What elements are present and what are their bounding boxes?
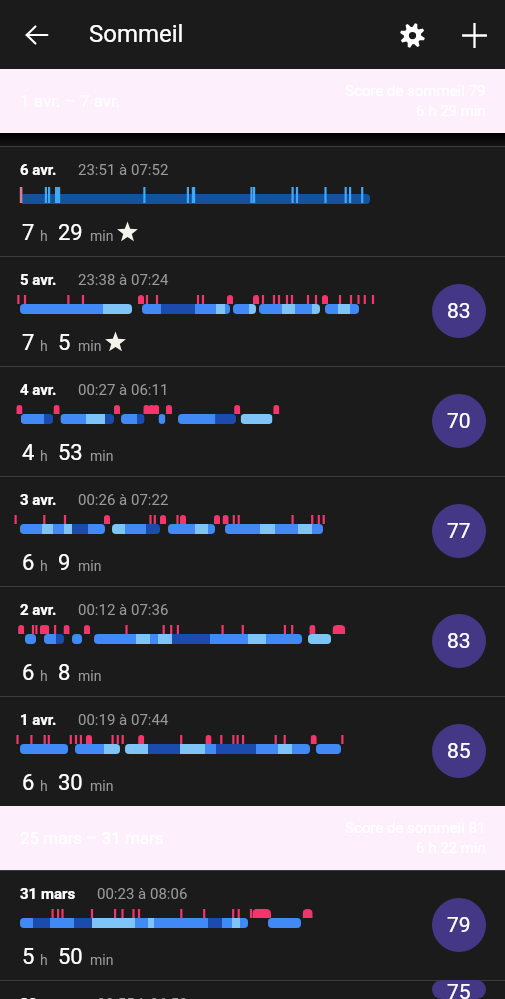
staticText: 6 <box>22 660 35 686</box>
staticText: Sommeil <box>89 20 184 48</box>
staticText: 6 <box>22 770 35 796</box>
staticText: 9 <box>58 550 71 576</box>
staticText: 00:12 à 07:36 <box>78 601 169 619</box>
staticText: 3 avr. <box>20 491 57 509</box>
staticText: 79 <box>447 913 471 938</box>
staticText: 00:23 à 08:06 <box>97 885 188 903</box>
button[interactable]: 75 <box>432 980 486 999</box>
staticText: 5 <box>22 944 35 970</box>
button[interactable]: 83 <box>432 284 486 338</box>
staticText: 1 avr. <box>20 711 57 729</box>
button[interactable]: 6 avr. <box>0 146 505 256</box>
staticText: min <box>90 448 114 464</box>
staticText: 30 <box>58 770 83 796</box>
staticText: min <box>90 952 114 968</box>
staticText: 00:27 à 06:11 <box>78 381 169 399</box>
staticText: 85 <box>447 739 471 764</box>
staticText: h <box>40 338 48 354</box>
staticText: 70 <box>447 409 471 434</box>
staticText: 23:38 à 07:24 <box>78 271 169 289</box>
staticText: 30 mars <box>20 995 76 999</box>
button[interactable]: 5 avr. <box>0 256 505 366</box>
staticText: 7 <box>22 330 35 356</box>
staticText: h <box>40 448 48 464</box>
staticText: 83 <box>447 629 471 654</box>
button[interactable]: 79 <box>432 898 486 952</box>
staticText: 6 h 29 min <box>416 102 486 120</box>
button[interactable]: Paramètres <box>389 12 435 58</box>
staticText: 75 <box>447 980 471 999</box>
staticText: 83 <box>447 299 471 324</box>
staticText: 00:26 à 07:22 <box>78 491 169 509</box>
staticText: min <box>90 778 114 794</box>
staticText: h <box>40 558 48 574</box>
staticText: h <box>40 668 48 684</box>
staticText: 5 avr. <box>20 271 57 289</box>
button[interactable]: 31 mars <box>0 870 505 980</box>
staticText: 5 <box>58 330 71 356</box>
staticText: min <box>90 228 114 244</box>
staticText: min <box>78 558 102 574</box>
staticText: 25 mars – 31 mars <box>20 828 164 848</box>
staticText: 6 avr. <box>20 161 57 179</box>
staticText: min <box>78 668 102 684</box>
button[interactable]: Ajouter <box>451 12 497 58</box>
staticText: 8 <box>58 660 71 686</box>
staticText: 7 <box>22 220 35 246</box>
staticText: 6 h 22 min <box>416 839 486 857</box>
button[interactable]: 1 avr. <box>0 696 505 806</box>
staticText: 1 avr. – 7 avr. <box>20 91 121 111</box>
staticText: 50 <box>58 944 83 970</box>
staticText: h <box>40 228 48 244</box>
staticText: 2 avr. <box>20 601 57 619</box>
staticText: 53 <box>58 440 83 466</box>
staticText: Score de sommeil 79 <box>345 82 486 100</box>
staticText: min <box>78 338 102 354</box>
staticText: 77 <box>447 519 471 544</box>
staticText: Score de sommeil 81 <box>345 819 486 837</box>
staticText: 29 <box>58 220 83 246</box>
staticText: 00:19 à 07:44 <box>78 711 169 729</box>
staticText: h <box>40 778 48 794</box>
staticText: 4 avr. <box>20 381 57 399</box>
button[interactable]: 85 <box>432 724 486 778</box>
button[interactable]: 70 <box>432 394 486 448</box>
button[interactable]: 4 avr. <box>0 366 505 476</box>
button[interactable]: 77 <box>432 504 486 558</box>
staticText: h <box>40 952 48 968</box>
staticText: 6 <box>22 550 35 576</box>
staticText: 00:55 à 06:58 <box>97 995 188 999</box>
button[interactable]: Retour <box>14 12 60 58</box>
button[interactable]: 30 mars <box>0 980 505 999</box>
button[interactable]: 2 avr. <box>0 586 505 696</box>
button[interactable]: 3 avr. <box>0 476 505 586</box>
button[interactable]: 83 <box>432 614 486 668</box>
staticText: 23:51 à 07:52 <box>78 161 169 179</box>
staticText: 4 <box>22 440 35 466</box>
staticText: 31 mars <box>20 885 76 903</box>
